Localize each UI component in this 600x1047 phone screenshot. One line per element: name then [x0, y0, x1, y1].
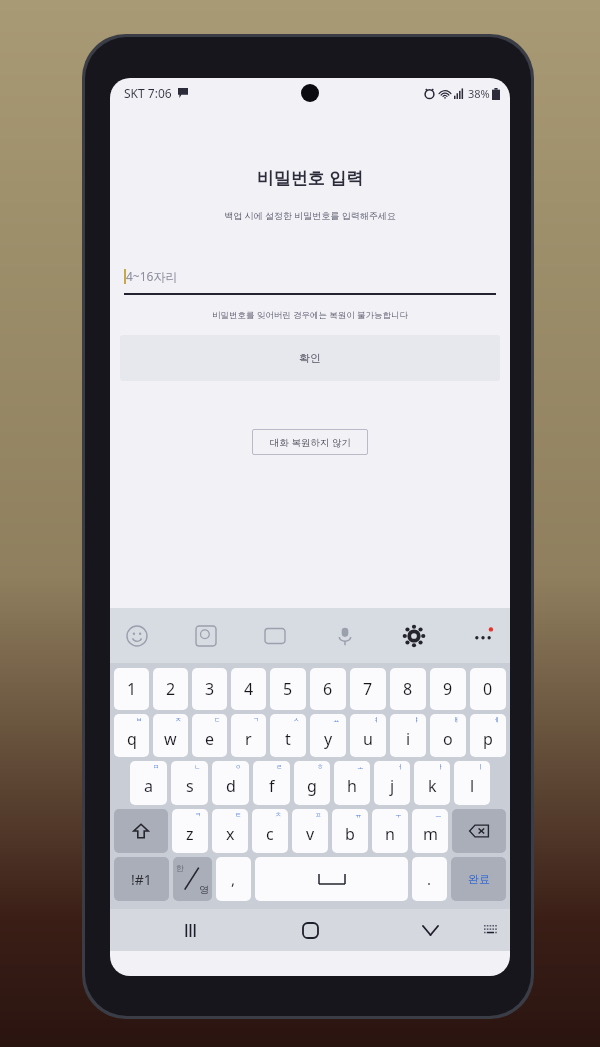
button[interactable]: ㅣ [454, 761, 490, 805]
staticText: 5 [283, 678, 293, 700]
button[interactable]: 0 [470, 668, 506, 710]
staticText: ㅎ [317, 763, 324, 771]
staticText: ㅅ [293, 716, 300, 724]
button[interactable]: ㅅ [270, 714, 306, 757]
button[interactable]: 8 [390, 668, 426, 710]
button[interactable]: ㅂ [114, 714, 149, 757]
button[interactable]: ㅇ [212, 761, 249, 805]
button[interactable]: ㅡ [412, 809, 448, 853]
staticText: ㅕ [373, 716, 380, 724]
button[interactable]: 3 [192, 668, 227, 710]
button[interactable]: 9 [430, 668, 466, 710]
button[interactable]: ㄷ [192, 714, 227, 757]
button[interactable]: More options [472, 625, 494, 647]
button[interactable]: !#1 [114, 857, 169, 901]
button[interactable]: ㅑ [390, 714, 426, 757]
staticText: 비밀번호를 잊어버린 경우에는 복원이 불가능합니다 [110, 309, 510, 321]
button[interactable]: Recents [173, 913, 207, 947]
button[interactable]: 완료 [451, 857, 506, 901]
button[interactable]: ㅓ [374, 761, 410, 805]
button[interactable]: 4~16자리 [124, 259, 496, 293]
button[interactable]: ㅎ [294, 761, 330, 805]
button[interactable]: ㄹ [253, 761, 290, 805]
button[interactable]: , [216, 857, 251, 901]
staticText: 4~16자리 [126, 268, 178, 284]
staticText: m [423, 823, 438, 845]
staticText: i [406, 728, 411, 750]
staticText: ㅇ [235, 763, 242, 771]
staticText: 완료 [468, 872, 490, 886]
staticText: o [443, 728, 453, 750]
button[interactable]: ㅊ [252, 809, 288, 853]
staticText: 한 [176, 863, 184, 873]
button[interactable]: Backspace [452, 809, 506, 853]
button[interactable]: 4 [231, 668, 266, 710]
staticText: w [164, 728, 177, 750]
button[interactable]: ㅜ [372, 809, 408, 853]
button[interactable]: . [412, 857, 447, 901]
staticText: ㅏ [437, 763, 444, 771]
staticText: ㅣ [477, 763, 484, 771]
button[interactable]: ㅠ [332, 809, 368, 853]
button[interactable]: ㅌ [212, 809, 248, 853]
button[interactable]: Emoji [126, 625, 148, 647]
staticText: 3 [205, 678, 215, 700]
staticText: ㅡ [435, 811, 442, 819]
staticText: k [428, 775, 437, 797]
button[interactable]: 확인 [120, 335, 500, 381]
button[interactable]: 7 [350, 668, 386, 710]
staticText: !#1 [131, 870, 152, 889]
button[interactable]: Keyboard switcher [478, 917, 504, 943]
button[interactable]: ㅋ [172, 809, 208, 853]
staticText: ㅊ [275, 811, 282, 819]
button[interactable]: ㅕ [350, 714, 386, 757]
staticText: v [306, 823, 315, 845]
staticText: q [127, 728, 137, 750]
staticText: ㅈ [175, 716, 182, 724]
button[interactable]: Shift [114, 809, 168, 853]
button[interactable]: GIF [264, 625, 286, 647]
button[interactable]: ㅐ [430, 714, 466, 757]
staticText: j [390, 775, 395, 797]
button[interactable]: Space [255, 857, 408, 901]
staticText: 1 [127, 678, 137, 700]
staticText: ㅔ [493, 716, 500, 724]
staticText: 백업 시에 설정한 비밀번호를 입력해주세요 [110, 209, 510, 221]
button[interactable]: 대화 복원하지 않기 [252, 429, 368, 455]
button[interactable]: Stickers [195, 625, 217, 647]
button[interactable]: ㅁ [130, 761, 167, 805]
button[interactable]: ㅔ [470, 714, 506, 757]
button[interactable]: Switch language [173, 857, 212, 901]
staticText: 2 [166, 678, 176, 700]
staticText: 0 [483, 678, 493, 700]
button[interactable]: Voice input [334, 625, 356, 647]
button[interactable]: Home [293, 913, 327, 947]
staticText: 9 [443, 678, 453, 700]
button[interactable]: ㅈ [153, 714, 188, 757]
staticText: ㅓ [397, 763, 404, 771]
button[interactable]: ㅏ [414, 761, 450, 805]
staticText: d [226, 775, 236, 797]
staticText: t [285, 728, 291, 750]
button[interactable]: ㄱ [231, 714, 266, 757]
staticText: y [324, 728, 333, 750]
staticText: ㄹ [276, 763, 283, 771]
staticText: ㅂ [136, 716, 143, 724]
staticText: 확인 [299, 351, 321, 365]
button[interactable]: ㅗ [334, 761, 370, 805]
staticText: h [347, 775, 357, 797]
staticText: x [226, 823, 235, 845]
button[interactable]: Hide keyboard [413, 913, 447, 947]
button[interactable]: 2 [153, 668, 188, 710]
staticText: ㄴ [194, 763, 201, 771]
staticText: z [186, 823, 194, 845]
button[interactable]: ㄴ [171, 761, 208, 805]
button[interactable]: ㅍ [292, 809, 328, 853]
staticText: 대화 복원하지 않기 [270, 436, 351, 449]
button[interactable]: 6 [310, 668, 346, 710]
button[interactable]: ㅛ [310, 714, 346, 757]
button[interactable]: 5 [270, 668, 306, 710]
staticText: , [231, 869, 236, 889]
button[interactable]: Keyboard settings [403, 625, 425, 647]
button[interactable]: 1 [114, 668, 149, 710]
